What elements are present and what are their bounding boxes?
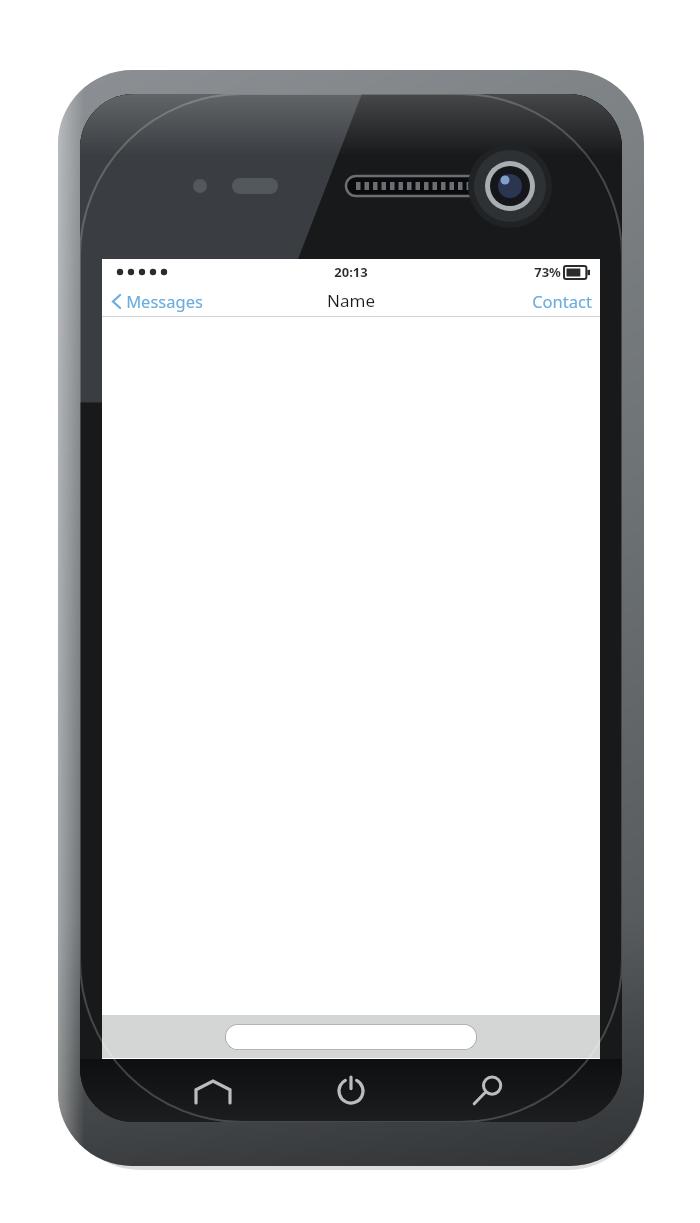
- staticText: Messages: [126, 290, 203, 312]
- staticText: 73%: [534, 263, 561, 281]
- button[interactable]: Message input field: [225, 1024, 477, 1050]
- staticText: Contact: [532, 290, 592, 312]
- button[interactable]: Contact: [524, 290, 600, 312]
- button[interactable]: Home: [186, 1064, 240, 1118]
- staticText: Name: [327, 289, 375, 312]
- button[interactable]: Messages: [102, 290, 211, 312]
- button[interactable]: Power: [324, 1064, 378, 1118]
- staticText: 20:13: [334, 263, 368, 281]
- button[interactable]: Search: [460, 1064, 514, 1118]
